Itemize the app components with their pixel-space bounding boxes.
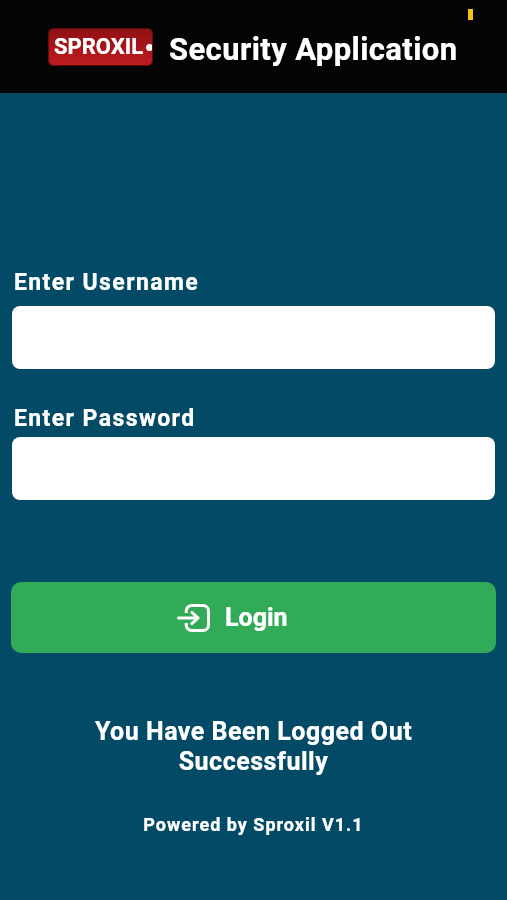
button[interactable]: SPROXIL xyxy=(48,28,153,66)
button[interactable] xyxy=(12,306,495,369)
button[interactable]: Login xyxy=(11,582,496,653)
staticText: SPROXIL xyxy=(54,34,144,60)
staticText: Login xyxy=(225,603,288,632)
staticText: Powered by Sproxil V1.1 xyxy=(0,814,507,835)
button[interactable] xyxy=(12,437,495,500)
staticText: Enter Username xyxy=(14,269,200,296)
staticText: Security Application xyxy=(169,31,458,67)
staticText: You Have Been Logged Out Successfully xyxy=(0,717,507,776)
staticText: Enter Password xyxy=(14,405,196,432)
